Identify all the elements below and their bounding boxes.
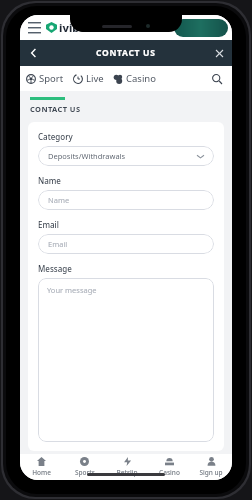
staticText: ivibet [59,20,91,35]
button[interactable]: Back [24,43,44,63]
staticText: CONTACT US [96,47,156,59]
staticText: Casino [159,468,180,477]
button[interactable]: Name [38,190,214,210]
button[interactable]: Search [208,70,226,88]
staticText: Email [48,239,68,249]
staticText: Message [38,263,72,274]
button[interactable]: Live [73,72,104,85]
button[interactable]: Deposits/Withdrawals [38,146,214,166]
button[interactable]: Your message [38,278,214,442]
staticText: Email [38,219,59,230]
staticText: Deposits/Withdrawals [48,151,126,161]
button[interactable]: ivibet [46,20,91,35]
staticText: Live [86,72,104,85]
button[interactable]: Casino [148,454,190,480]
staticText: Your message [47,285,97,295]
button[interactable]: Promotions [174,19,228,37]
staticText: Name [38,175,61,186]
button[interactable]: Sport [26,72,64,85]
button[interactable]: Casino [113,72,156,85]
staticText: Name [48,195,70,205]
button[interactable]: Betslip [106,454,148,480]
staticText: CONTACT US [30,104,81,114]
button[interactable]: Sports [63,454,106,480]
button[interactable]: Sign up [190,454,232,480]
staticText: Home [32,468,51,477]
staticText: Sports [75,468,95,477]
staticText: Sign up [199,468,223,477]
staticText: Betslip [116,468,138,477]
button[interactable]: Home [20,454,63,480]
staticText: Casino [126,72,156,85]
button[interactable]: Close [210,44,228,62]
button[interactable]: Email [38,234,214,254]
staticText: Sport [39,72,64,85]
button[interactable]: Menu [25,19,43,37]
staticText: Category [38,131,73,142]
